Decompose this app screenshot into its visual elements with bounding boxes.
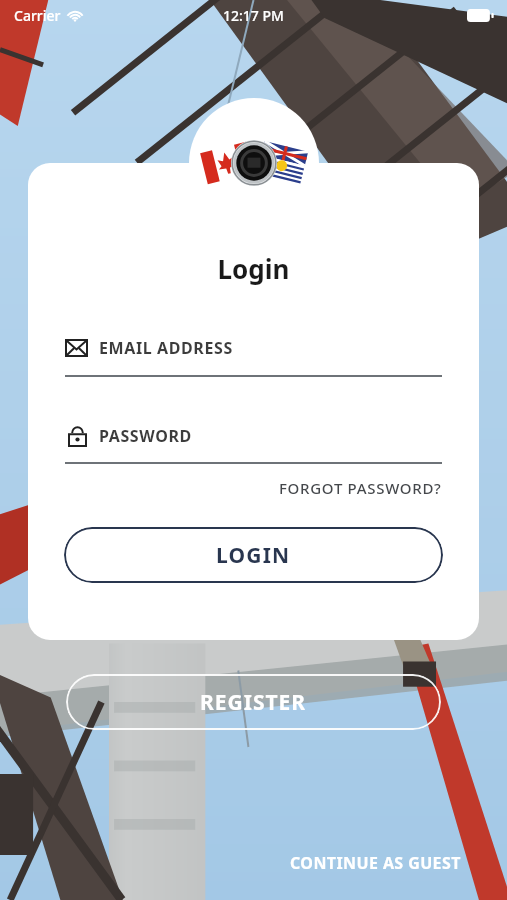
button[interactable]: EMAIL ADDRESS [65,337,442,377]
staticText: REGISTER [200,688,307,717]
button[interactable]: FORGOT PASSWORD? [279,478,442,498]
button[interactable]: CONTINUE AS GUEST [286,848,465,878]
staticText: FORGOT PASSWORD? [279,478,442,498]
staticText: 12:17 PM [223,6,284,25]
staticText: EMAIL ADDRESS [99,337,233,359]
staticText: Login [28,251,479,286]
button[interactable]: PASSWORD [65,425,442,464]
staticText: LOGIN [216,541,291,570]
button[interactable]: LOGIN [64,527,443,583]
staticText: PASSWORD [99,425,192,447]
staticText: Carrier [14,6,61,25]
button[interactable]: REGISTER [66,674,441,730]
staticText: CONTINUE AS GUEST [290,852,461,874]
